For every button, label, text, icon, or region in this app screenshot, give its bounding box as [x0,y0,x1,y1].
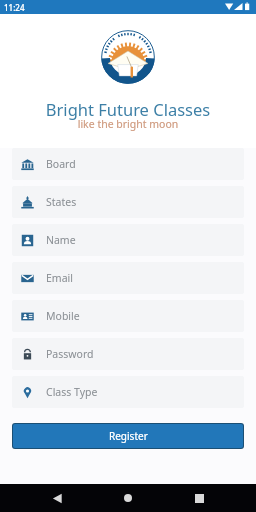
button[interactable]: Recent apps [185,484,213,512]
button[interactable]: Register [13,424,243,448]
staticText: Bright Future Classes [0,98,256,120]
button[interactable]: Email [12,262,244,294]
staticText: States [46,195,77,209]
staticText: Board [46,157,76,171]
staticText: Password [46,347,94,361]
button[interactable]: Name [12,224,244,256]
staticText: Name [46,233,76,247]
staticText: 11:24 [4,2,25,13]
staticText: Class Type [46,385,98,399]
button[interactable]: Home [114,484,142,512]
button[interactable]: Back [43,484,71,512]
staticText: Email [46,271,73,285]
staticText: Register [109,429,148,443]
button[interactable]: Board [12,148,244,180]
staticText: like the bright moon [0,117,256,131]
button[interactable]: Class Type [12,376,244,408]
button[interactable]: Password [12,338,244,370]
button[interactable]: Mobile [12,300,244,332]
button[interactable]: States [12,186,244,218]
staticText: Mobile [46,309,80,323]
